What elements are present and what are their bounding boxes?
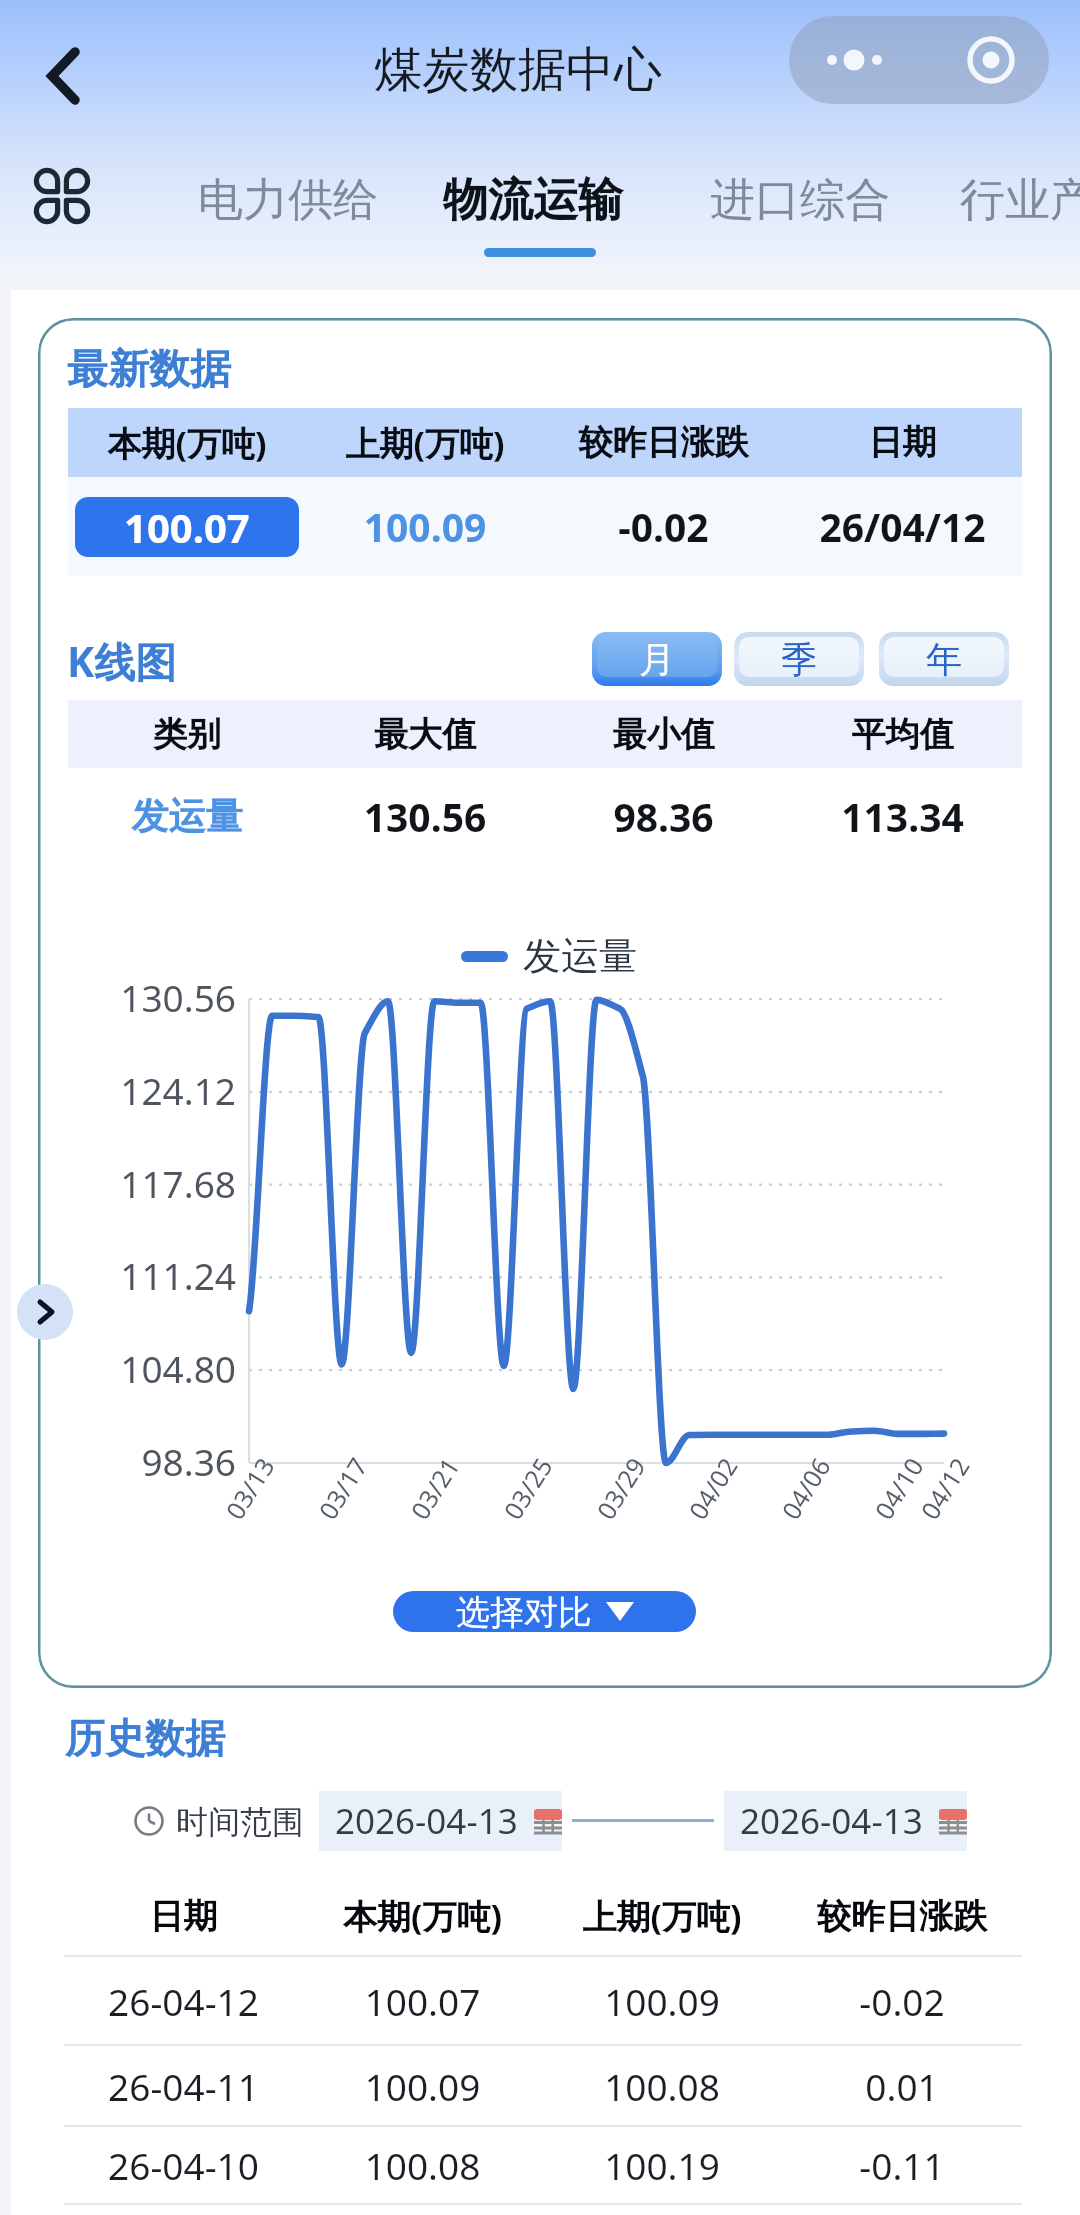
staticText: 111.24	[77, 1250, 236, 1300]
staticText: 26-04-11	[64, 2061, 303, 2111]
staticText: 04/10	[866, 1451, 931, 1525]
staticText: 最新数据	[67, 344, 231, 396]
staticText: 26-04-12	[64, 1976, 303, 2026]
staticText: 较昨日涨跌	[782, 1895, 1022, 1938]
button[interactable]: Categories	[24, 158, 100, 234]
staticText: 113.34	[783, 790, 1022, 843]
staticText: 本期(万吨)	[68, 420, 306, 466]
staticText: 0.01	[782, 2061, 1022, 2111]
staticText: K线图	[67, 633, 177, 689]
staticText: -0.11	[782, 2140, 1022, 2190]
staticText: 03/29	[588, 1451, 653, 1525]
staticText: 03/21	[402, 1451, 467, 1525]
staticText: 发运量	[523, 932, 637, 980]
staticText: 上期(万吨)	[542, 1893, 782, 1939]
staticText: 2026-04-13	[740, 1797, 923, 1845]
button[interactable]: 选择对比	[393, 1591, 696, 1632]
button[interactable]: 26-04-11	[64, 2046, 1022, 2125]
staticText: 发运量	[68, 793, 306, 840]
staticText: -0.02	[544, 500, 783, 553]
staticText: 季	[781, 637, 817, 682]
staticText: 月	[639, 637, 675, 682]
staticText: 100.09	[303, 2061, 542, 2111]
button[interactable]: 进口综合	[710, 172, 890, 229]
staticText: 26/04/12	[783, 500, 1022, 553]
staticText: 130.56	[77, 972, 236, 1022]
staticText: 行业产业	[960, 172, 1080, 229]
staticText: 日期	[783, 421, 1022, 464]
button[interactable]: 物流运输	[443, 172, 623, 257]
staticText: 最小值	[544, 713, 783, 756]
staticText: 选择对比	[456, 1591, 592, 1632]
staticText: 本期(万吨)	[303, 1893, 542, 1939]
staticText: 04/06	[773, 1451, 838, 1525]
staticText: 100.08	[303, 2140, 542, 2190]
button[interactable]: 26-04-12	[64, 1957, 1022, 2044]
button[interactable]: 季	[734, 632, 864, 686]
staticText: 04/02	[680, 1451, 745, 1525]
staticText: 03/25	[495, 1451, 560, 1525]
button[interactable]: More options	[789, 16, 1049, 104]
staticText: 100.07	[124, 500, 250, 554]
staticText: 时间范围	[176, 1802, 304, 1842]
staticText: 03/13	[217, 1451, 282, 1525]
staticText: 03/17	[310, 1451, 375, 1525]
button[interactable]: 月	[592, 632, 722, 686]
button[interactable]: 年	[879, 632, 1009, 686]
staticText: 124.12	[77, 1065, 236, 1115]
button[interactable]: 100.07	[75, 497, 299, 557]
button[interactable]: 电力供给	[198, 172, 378, 229]
staticText: 04/12	[912, 1451, 977, 1525]
staticText: 100.07	[303, 1976, 542, 2026]
staticText: 100.09	[542, 1976, 782, 2026]
staticText: -0.02	[782, 1976, 1022, 2026]
staticText: 煤炭数据中心	[374, 40, 662, 100]
staticText: 104.80	[77, 1343, 236, 1393]
staticText: 100.19	[542, 2140, 782, 2190]
staticText: 电力供给	[198, 172, 378, 229]
staticText: 较昨日涨跌	[544, 421, 783, 464]
staticText: 平均值	[783, 713, 1022, 756]
button[interactable]: Next chart	[17, 1284, 73, 1340]
staticText: 进口综合	[710, 172, 890, 229]
button[interactable]: 26-04-10	[64, 2127, 1022, 2203]
staticText: 100.09	[306, 500, 544, 553]
button[interactable]: Back	[20, 31, 112, 125]
button[interactable]: Pick date	[724, 1791, 967, 1851]
staticText: 物流运输	[443, 172, 623, 229]
staticText: 日期	[64, 1895, 303, 1938]
staticText: 类别	[68, 713, 306, 756]
staticText: 100.08	[542, 2061, 782, 2111]
staticText: 98.36	[77, 1436, 236, 1486]
staticText: 上期(万吨)	[306, 420, 544, 466]
button[interactable]: 行业产业	[960, 172, 1080, 229]
staticText: 2026-04-13	[335, 1797, 518, 1845]
button[interactable]: Pick date	[319, 1791, 562, 1851]
staticText: 26-04-10	[64, 2140, 303, 2190]
staticText: 130.56	[306, 790, 544, 843]
staticText: 117.68	[77, 1158, 236, 1208]
staticText: 98.36	[544, 790, 783, 843]
staticText: 历史数据	[65, 1713, 225, 1763]
staticText: 最大值	[306, 713, 544, 756]
staticText: 年	[926, 637, 962, 682]
